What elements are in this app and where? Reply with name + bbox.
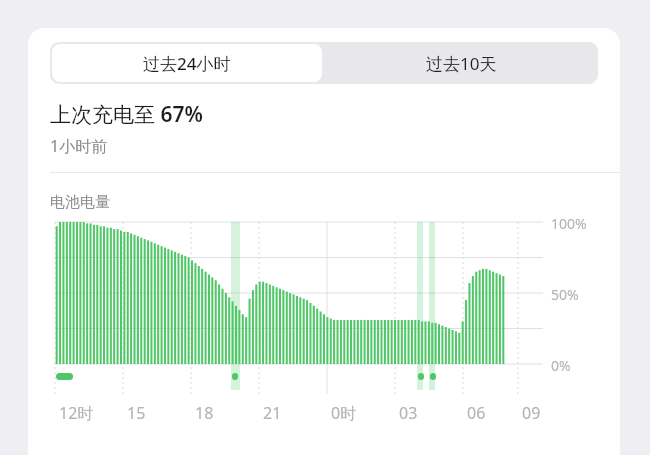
staticText: 0% — [551, 356, 571, 375]
staticText: 100% — [551, 214, 587, 233]
staticText: 09 — [522, 402, 541, 424]
staticText: 上次充电至 67% — [50, 100, 203, 129]
staticText: 03 — [399, 402, 418, 424]
staticText: 电池电量 — [50, 193, 110, 212]
button[interactable]: 过去10天 — [324, 42, 598, 84]
staticText: 18 — [195, 402, 214, 424]
staticText: 06 — [467, 402, 486, 424]
staticText: 1小时前 — [50, 135, 108, 157]
staticText: 过去24小时 — [143, 52, 231, 75]
staticText: 0时 — [331, 402, 357, 424]
staticText: 21 — [263, 402, 282, 424]
staticText: 过去10天 — [426, 52, 497, 75]
button[interactable]: 过去24小时 — [52, 44, 322, 82]
staticText: 12时 — [59, 402, 94, 424]
staticText: 50% — [551, 285, 579, 304]
staticText: 15 — [127, 402, 146, 424]
